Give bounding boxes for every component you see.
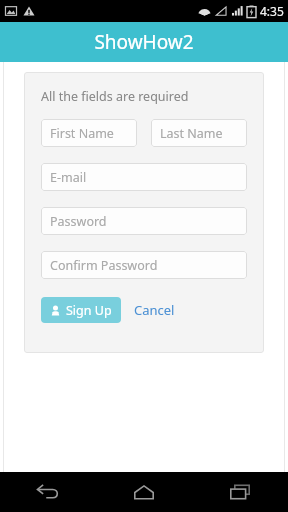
staticText: Cancel bbox=[134, 301, 175, 319]
staticText: Confirm Password bbox=[50, 257, 158, 274]
staticText: Sign Up bbox=[66, 302, 112, 319]
button[interactable]: Cancel bbox=[132, 297, 177, 323]
button[interactable]: Recent apps bbox=[192, 472, 288, 512]
staticText: E-mail bbox=[50, 169, 87, 186]
button[interactable]: Sign Up bbox=[41, 297, 121, 323]
button[interactable]: Confirm Password bbox=[41, 251, 247, 279]
button[interactable]: Last Name bbox=[151, 119, 247, 147]
staticText: First Name bbox=[50, 125, 114, 142]
button[interactable]: E-mail bbox=[41, 163, 247, 191]
button[interactable]: Password bbox=[41, 207, 247, 235]
staticText: 4:35 bbox=[260, 3, 284, 19]
button[interactable]: Home bbox=[96, 472, 192, 512]
button[interactable]: First Name bbox=[41, 119, 137, 147]
staticText: Password bbox=[50, 213, 107, 230]
staticText: All the fields are required bbox=[41, 88, 189, 105]
staticText: ShowHow2 bbox=[94, 29, 194, 55]
button[interactable]: Back bbox=[0, 472, 96, 512]
staticText: Last Name bbox=[160, 125, 223, 142]
